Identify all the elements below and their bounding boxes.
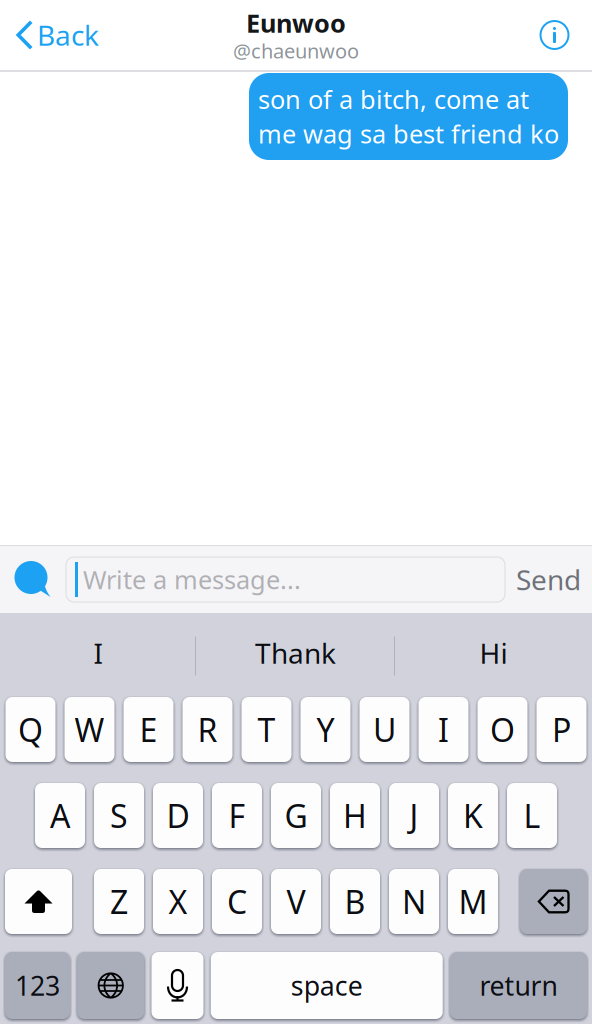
button[interactable]: return: [450, 952, 587, 1019]
button[interactable]: O: [477, 697, 527, 762]
staticText: 123: [15, 967, 60, 1004]
button[interactable]: I: [0, 617, 196, 689]
staticText: L: [523, 794, 540, 837]
button[interactable]: Thank: [196, 617, 395, 689]
staticText: M: [458, 880, 487, 923]
button[interactable]: A: [35, 783, 85, 848]
staticText: I: [93, 634, 102, 672]
button[interactable]: D: [153, 783, 203, 848]
button[interactable]: G: [271, 783, 321, 848]
button[interactable]: S: [94, 783, 144, 848]
button[interactable]: P: [536, 697, 586, 762]
button[interactable]: N: [389, 869, 439, 934]
button[interactable]: Shift: [5, 869, 72, 934]
button[interactable]: T: [241, 697, 291, 762]
staticText: son of a bitch, come at me wag sa best f…: [258, 82, 559, 151]
staticText: S: [110, 794, 128, 837]
staticText: Y: [316, 708, 334, 751]
staticText: return: [479, 967, 557, 1004]
staticText: R: [197, 708, 217, 751]
staticText: I: [438, 708, 449, 751]
button[interactable]: Media: [0, 546, 66, 613]
staticText: G: [284, 794, 307, 837]
staticText: Q: [18, 708, 43, 751]
button[interactable]: Y: [300, 697, 350, 762]
button[interactable]: Send: [505, 546, 592, 613]
staticText: O: [490, 708, 515, 751]
button[interactable]: X: [153, 869, 203, 934]
staticText: U: [373, 708, 396, 751]
staticText: V: [286, 880, 305, 923]
button[interactable]: L: [507, 783, 557, 848]
staticText: Back: [37, 16, 99, 54]
staticText: @chaeunwoo: [233, 37, 359, 64]
button[interactable]: W: [64, 697, 114, 762]
button[interactable]: R: [182, 697, 232, 762]
staticText: Write a message...: [83, 562, 301, 597]
button[interactable]: space: [211, 952, 443, 1019]
button[interactable]: Next keyboard: [77, 952, 144, 1019]
staticText: A: [50, 794, 70, 837]
button[interactable]: E: [123, 697, 173, 762]
staticText: B: [344, 880, 365, 923]
staticText: Z: [110, 880, 128, 923]
button[interactable]: I: [418, 697, 468, 762]
staticText: Send: [516, 560, 581, 598]
button[interactable]: Delete: [520, 869, 587, 934]
button[interactable]: K: [448, 783, 498, 848]
staticText: C: [227, 880, 247, 923]
button[interactable]: Conversation info: [517, 0, 592, 70]
staticText: K: [463, 794, 483, 837]
staticText: J: [409, 794, 418, 837]
staticText: H: [343, 794, 367, 837]
staticText: X: [168, 880, 187, 923]
button[interactable]: Z: [94, 869, 144, 934]
staticText: N: [402, 880, 426, 923]
button[interactable]: J: [389, 783, 439, 848]
button[interactable]: U: [359, 697, 409, 762]
staticText: Thank: [255, 634, 336, 672]
button[interactable]: F: [212, 783, 262, 848]
staticText: Hi: [479, 634, 507, 672]
staticText: P: [552, 708, 571, 751]
staticText: F: [228, 794, 245, 837]
button[interactable]: M: [448, 869, 498, 934]
button[interactable]: B: [330, 869, 380, 934]
staticText: space: [291, 967, 363, 1004]
button[interactable]: Write a message...: [66, 557, 505, 602]
staticText: W: [74, 708, 104, 751]
button[interactable]: Q: [5, 697, 55, 762]
staticText: E: [139, 708, 157, 751]
button[interactable]: Hi: [395, 617, 592, 689]
staticText: T: [257, 708, 275, 751]
staticText: D: [166, 794, 189, 837]
staticText: Eunwoo: [246, 6, 346, 40]
button[interactable]: H: [330, 783, 380, 848]
button[interactable]: C: [212, 869, 262, 934]
button[interactable]: V: [271, 869, 321, 934]
button[interactable]: 123: [5, 952, 70, 1019]
button[interactable]: Back: [0, 0, 109, 70]
button[interactable]: Dictate: [151, 952, 203, 1019]
